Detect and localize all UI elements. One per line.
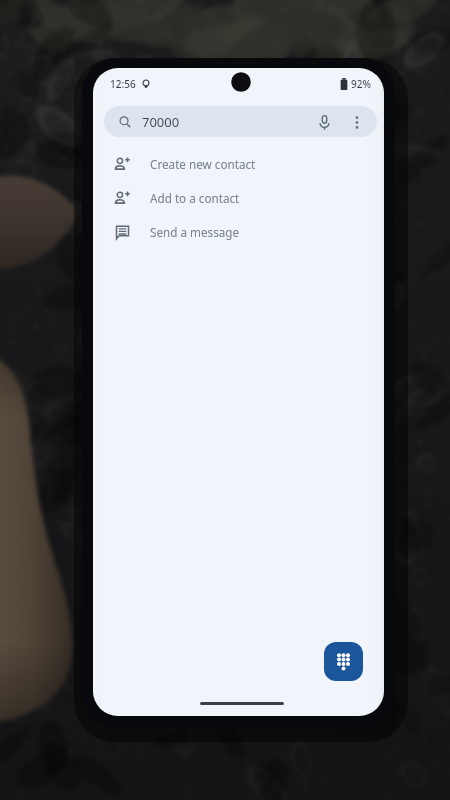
button[interactable]: Voice search <box>311 109 337 135</box>
button[interactable]: Dialpad <box>324 642 363 681</box>
staticText: Send a message <box>150 224 240 240</box>
button[interactable]: More options <box>344 109 370 135</box>
staticText: 12:56 <box>110 77 136 91</box>
button[interactable]: Send a message <box>93 215 384 249</box>
button[interactable]: 70000 <box>104 106 377 137</box>
button[interactable]: Add to a contact <box>93 181 384 215</box>
staticText: 92% <box>351 77 371 91</box>
staticText: Create new contact <box>150 156 256 172</box>
staticText: Add to a contact <box>150 190 240 206</box>
staticText: 70000 <box>142 113 180 131</box>
button[interactable]: Create new contact <box>93 147 384 181</box>
